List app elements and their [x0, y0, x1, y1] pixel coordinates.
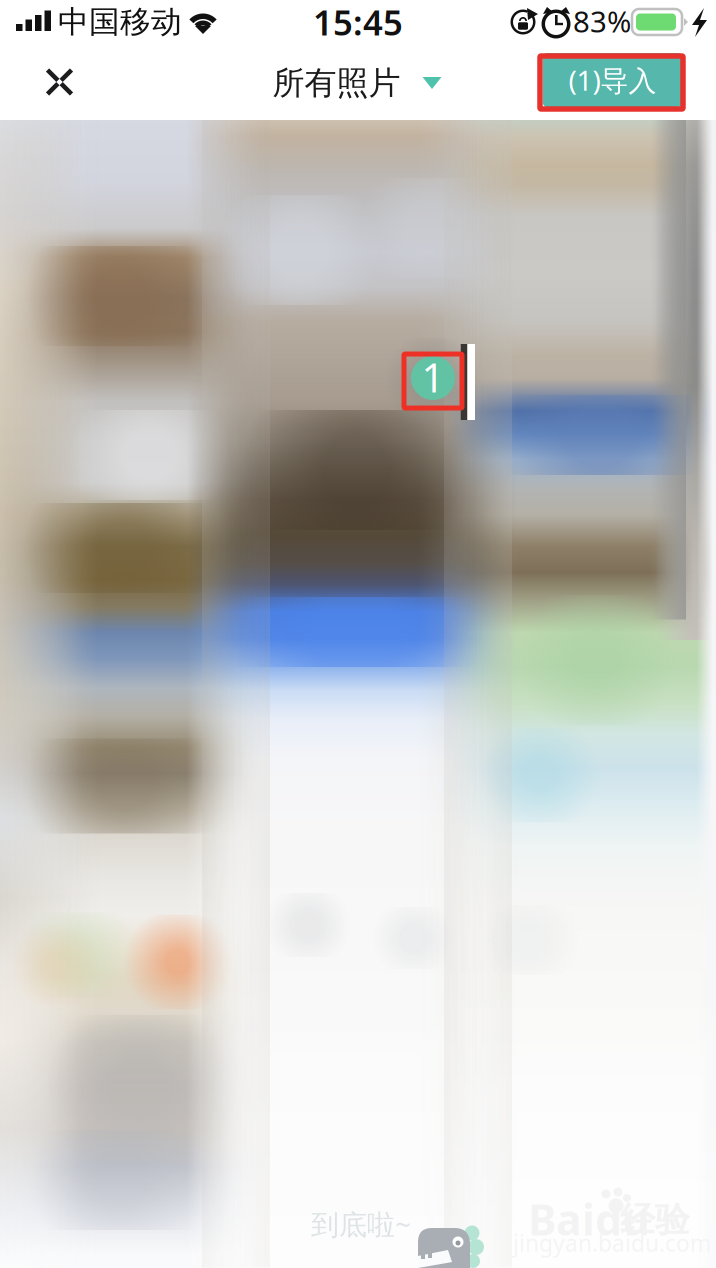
staticText: 到底啦~ [311, 1205, 411, 1243]
staticText: 中国移动 [58, 3, 182, 41]
staticText: 经验 [620, 1199, 690, 1241]
button[interactable]: (1)导入 [543, 53, 682, 107]
staticText: 15:45 [313, 0, 403, 45]
button[interactable]: 所有照片 [266, 57, 447, 109]
button[interactable]: Close [24, 47, 94, 117]
staticText: jingyan.baidu.com [513, 1228, 711, 1258]
staticText: 1 [421, 350, 444, 403]
staticText: 所有照片 [272, 63, 400, 103]
staticText: (1)导入 [568, 61, 656, 99]
staticText: 83% [573, 1, 631, 40]
staticText: Baidu [528, 1191, 650, 1247]
